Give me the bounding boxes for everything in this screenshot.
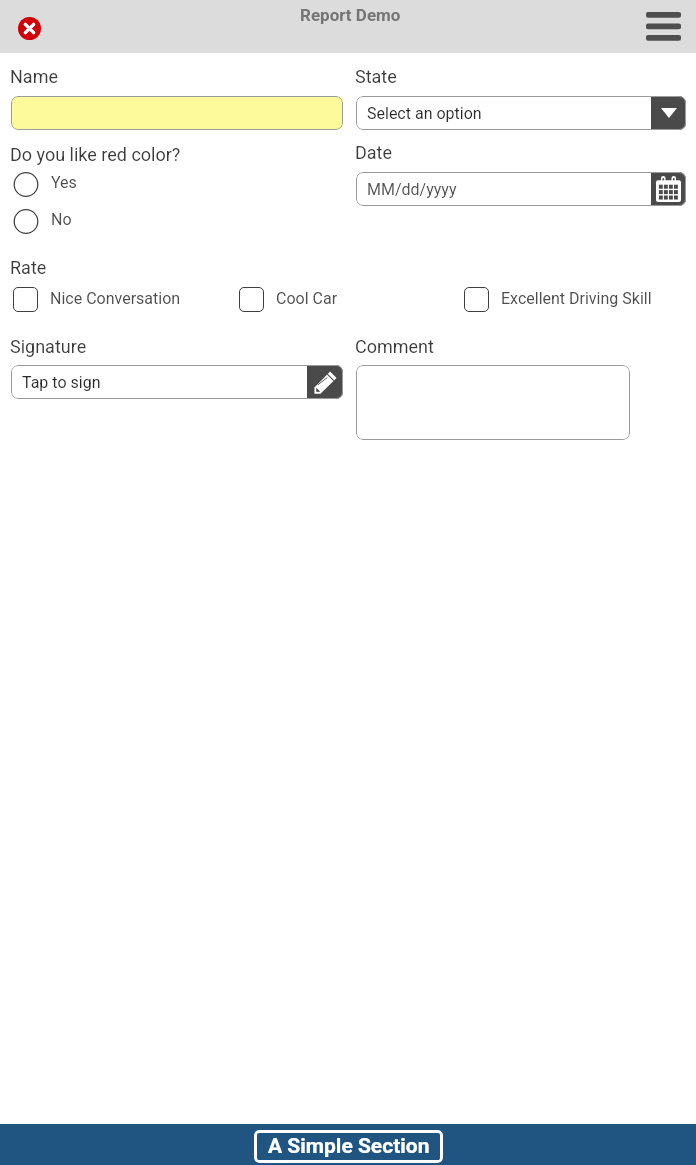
button[interactable]: Menu [646, 12, 681, 41]
button[interactable]: Close [18, 17, 41, 40]
button[interactable]: A Simple Section [254, 1130, 443, 1163]
staticText: No [51, 210, 72, 229]
staticText: Yes [51, 173, 77, 192]
staticText: State [355, 66, 397, 87]
staticText: Nice Conversation [50, 289, 181, 308]
staticText: Comment [355, 336, 434, 357]
button[interactable]: Tap to sign [11, 365, 343, 399]
button[interactable]: No [13, 209, 153, 234]
staticText: Select an option [367, 104, 482, 123]
staticText: Do you like red color? [10, 144, 181, 165]
button[interactable]: Nice Conversation [13, 287, 181, 312]
staticText: Tap to sign [22, 373, 101, 392]
staticText: Rate [10, 257, 47, 278]
button[interactable]: Comment input field [356, 365, 630, 440]
staticText: A Simple Section [268, 1134, 430, 1159]
button[interactable]: Name input field [11, 96, 343, 130]
staticText: Signature [10, 336, 87, 357]
button[interactable]: Yes [13, 172, 153, 197]
staticText: MM/dd/yyyy [367, 180, 457, 199]
staticText: Cool Car [276, 289, 338, 308]
button[interactable]: Sign [307, 365, 343, 399]
staticText: Name [10, 66, 58, 87]
button[interactable]: MM/dd/yyyy [356, 172, 686, 206]
staticText: Date [355, 142, 393, 163]
staticText: Report Demo [300, 5, 401, 25]
button[interactable]: Cool Car [239, 287, 338, 312]
button[interactable]: Select an option [356, 96, 686, 130]
staticText: Excellent Driving Skill [501, 289, 652, 308]
button[interactable]: Pick date [651, 172, 686, 206]
button[interactable]: Excellent Driving Skill [464, 287, 652, 312]
